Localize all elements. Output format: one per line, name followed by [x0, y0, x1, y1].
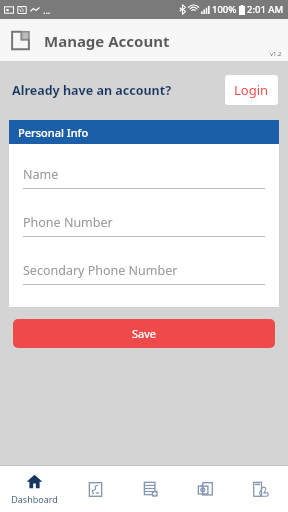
staticText: 100% — [212, 3, 237, 16]
button[interactable]: Save — [13, 319, 275, 348]
button[interactable]: Login — [225, 75, 278, 105]
button[interactable]: Camera — [178, 466, 233, 512]
button[interactable]: Sign — [233, 466, 288, 512]
staticText: Phone Number — [23, 214, 113, 231]
staticText: Secondary Phone Number — [23, 262, 178, 279]
staticText: 2:01 AM — [247, 3, 284, 16]
button[interactable]: Secondary Phone Number — [23, 262, 265, 285]
button[interactable]: Name — [23, 166, 265, 189]
staticText: Save — [132, 326, 157, 341]
staticText: Personal Info — [18, 125, 89, 140]
staticText: Manage Account — [44, 31, 170, 51]
staticText: Dashboard — [11, 493, 58, 505]
button[interactable]: Phone Number — [23, 214, 265, 237]
staticText: Already have an account? — [12, 82, 172, 99]
button[interactable]: Add record — [123, 466, 178, 512]
staticText: v1.2 — [270, 50, 282, 58]
staticText: Login — [234, 81, 269, 99]
button[interactable]: Notes — [68, 466, 123, 512]
staticText: Name — [23, 166, 59, 183]
staticText: ... — [43, 4, 51, 16]
button[interactable]: Dashboard — [0, 466, 68, 512]
